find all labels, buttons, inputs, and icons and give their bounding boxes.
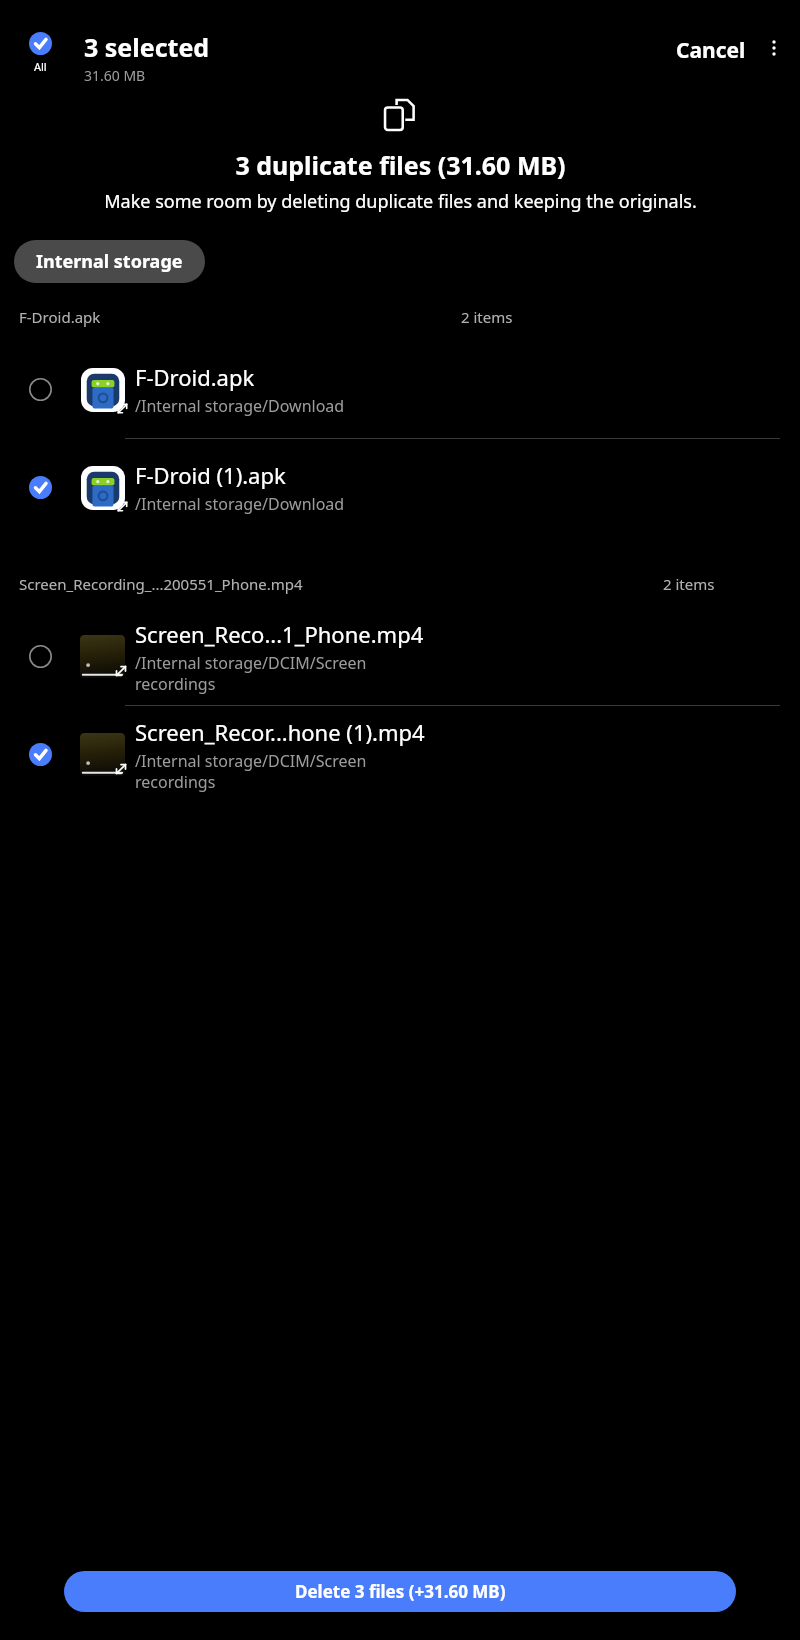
other: Selected	[0, 706, 80, 803]
staticText: Make some room by deleting duplicate fil…	[104, 189, 697, 214]
staticText: 3 duplicate files (31.60 MB)	[235, 148, 566, 182]
button[interactable]: Delete 3 files (+31.60 MB)	[64, 1571, 736, 1612]
staticText: 2 items	[461, 307, 513, 327]
staticText: F-Droid.apk	[135, 362, 255, 392]
staticText: /Internal storage/Download	[135, 493, 345, 515]
staticText: 3 selected	[84, 30, 210, 64]
staticText: All	[34, 59, 47, 74]
staticText: /Internal storage/DCIM/Screen recordings	[135, 652, 367, 695]
button[interactable]: More options	[760, 34, 788, 62]
button[interactable]: Selected	[0, 706, 800, 803]
other: Selected	[0, 439, 80, 536]
other: Not selected	[0, 341, 80, 438]
button[interactable]: Not selected	[0, 608, 800, 705]
staticText: /Internal storage/DCIM/Screen recordings	[135, 750, 367, 793]
staticText: Cancel	[676, 36, 746, 65]
staticText: Internal storage	[36, 249, 183, 274]
staticText: Screen_Reco...1_Phone.mp4	[135, 619, 424, 649]
button[interactable]: Not selected	[0, 341, 800, 438]
staticText: 31.60 MB	[84, 66, 146, 84]
staticText: F-Droid.apk	[19, 307, 101, 327]
other: Not selected	[0, 608, 80, 705]
staticText: F-Droid (1).apk	[135, 460, 286, 490]
staticText: /Internal storage/Download	[135, 395, 345, 417]
staticText: Screen_Recording_...200551_Phone.mp4	[19, 574, 303, 594]
button[interactable]: Select all	[12, 24, 68, 74]
button[interactable]: Internal storage	[14, 240, 205, 283]
button[interactable]: Cancel	[676, 36, 746, 65]
button[interactable]: Selected	[0, 439, 800, 536]
staticText: Delete 3 files (+31.60 MB)	[295, 1580, 506, 1603]
staticText: Screen_Recor...hone (1).mp4	[135, 717, 425, 747]
staticText: 2 items	[663, 574, 715, 594]
